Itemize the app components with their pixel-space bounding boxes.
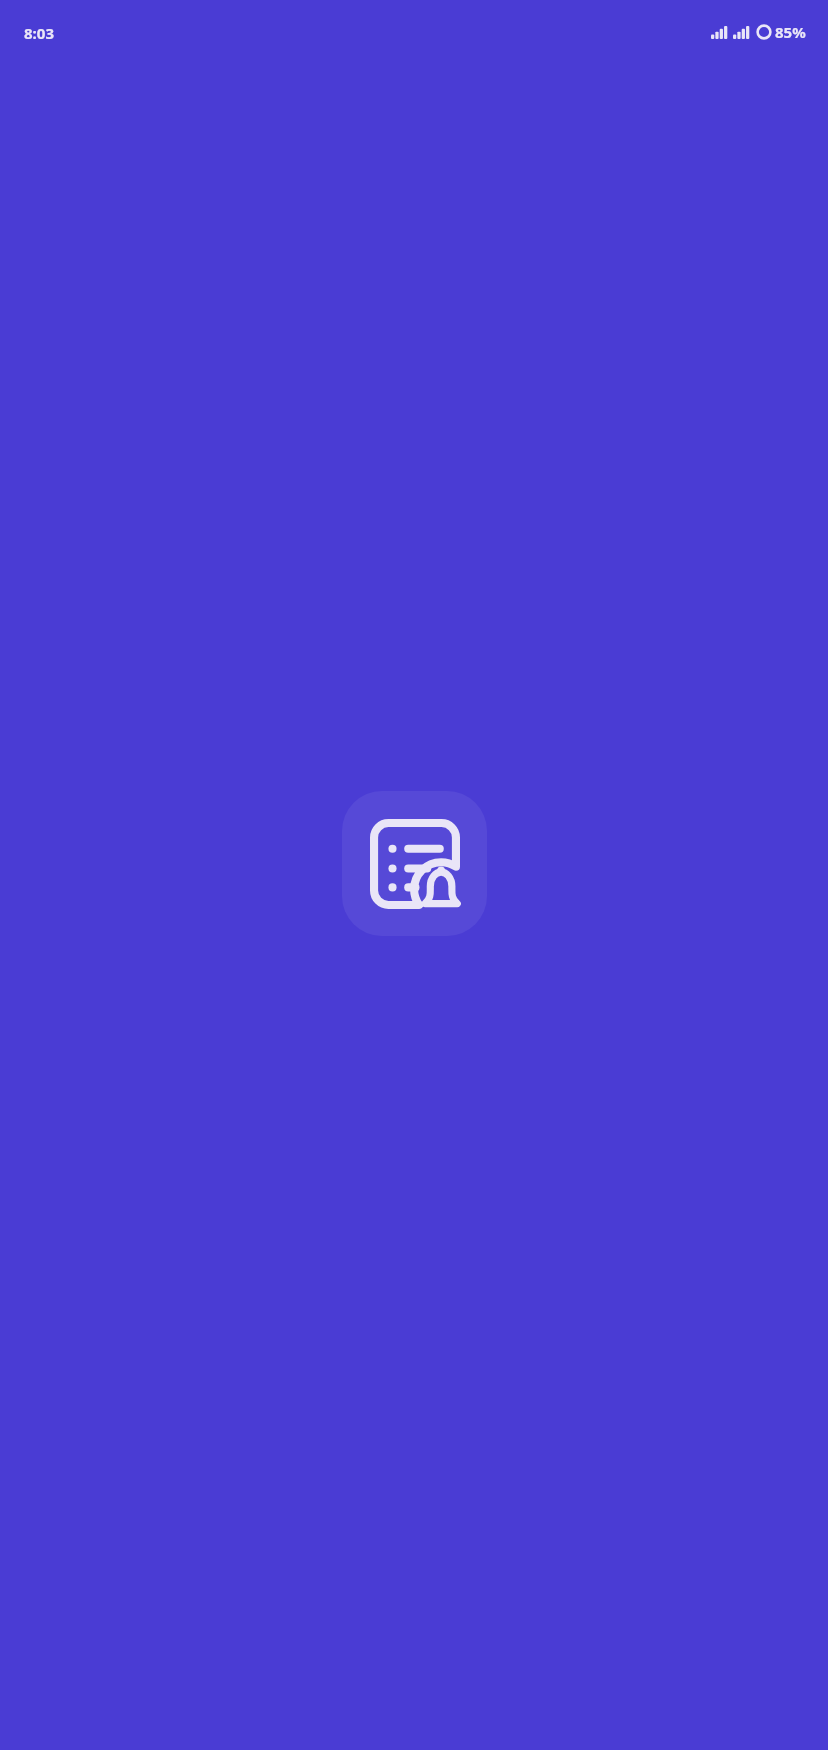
staticText: 8:03: [24, 23, 54, 43]
staticText: 85%: [775, 22, 806, 42]
button[interactable]: App logo: [342, 791, 487, 936]
